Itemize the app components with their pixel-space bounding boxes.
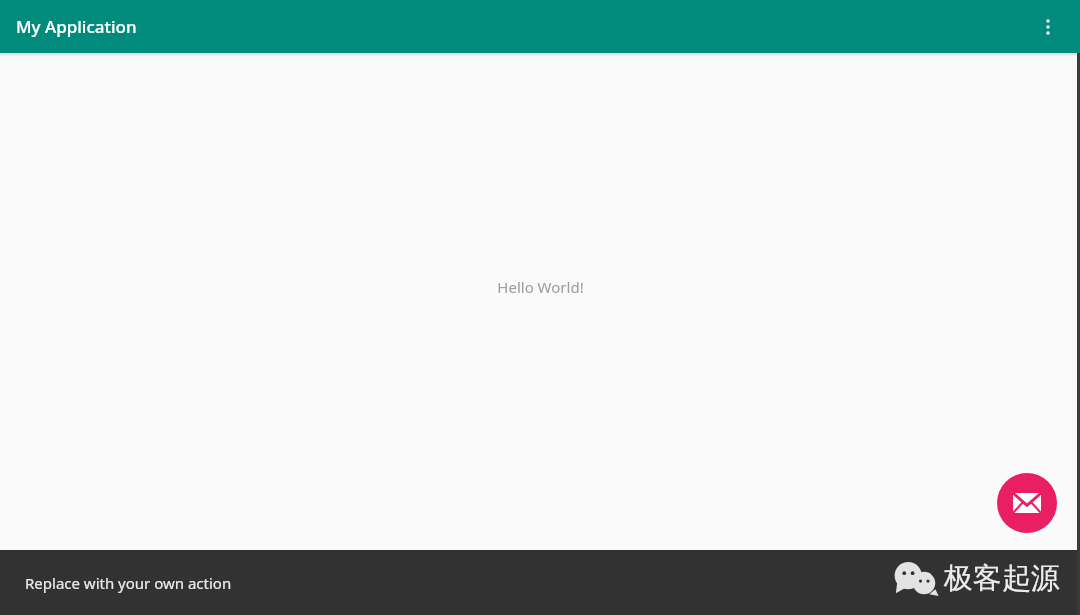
staticText: My Application [16,15,137,38]
button[interactable]: More options [1030,9,1066,45]
staticText: 极客起源 [944,560,1060,597]
staticText: Hello World! [497,277,584,297]
staticText: Replace with your own action [25,573,232,593]
button[interactable]: Replace with your own action [0,550,1080,615]
button[interactable]: Send email [997,473,1057,533]
